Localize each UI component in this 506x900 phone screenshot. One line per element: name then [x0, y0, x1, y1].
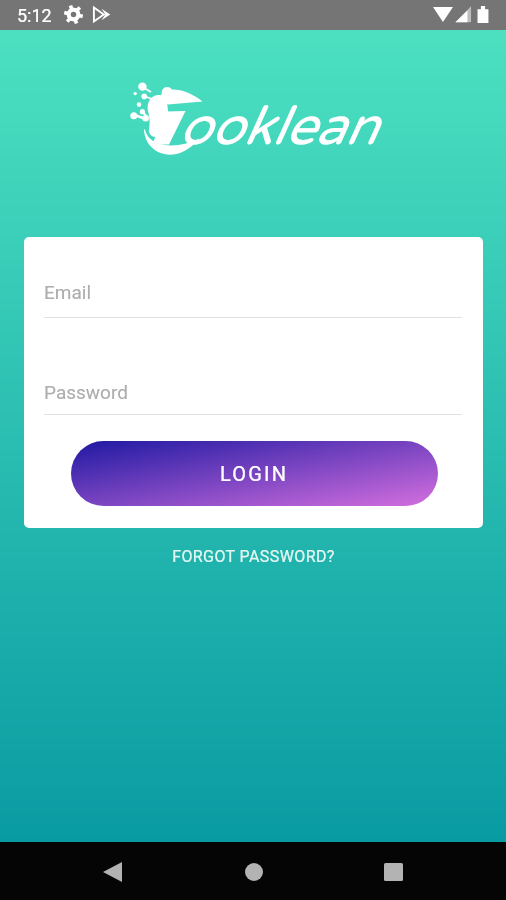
- button[interactable]: LOGIN: [71, 441, 438, 506]
- staticText: LOGIN: [220, 462, 289, 485]
- button[interactable]: Recent apps: [370, 848, 417, 895]
- button[interactable]: FORGOT PASSWORD?: [0, 543, 506, 569]
- staticText: ooklean: [178, 95, 377, 159]
- staticText: Password: [44, 381, 128, 403]
- staticText: FORGOT PASSWORD?: [172, 547, 335, 566]
- staticText: Email: [44, 281, 92, 303]
- button[interactable]: Home: [230, 848, 277, 895]
- staticText: 5:12: [17, 5, 52, 26]
- button[interactable]: Back: [89, 848, 136, 895]
